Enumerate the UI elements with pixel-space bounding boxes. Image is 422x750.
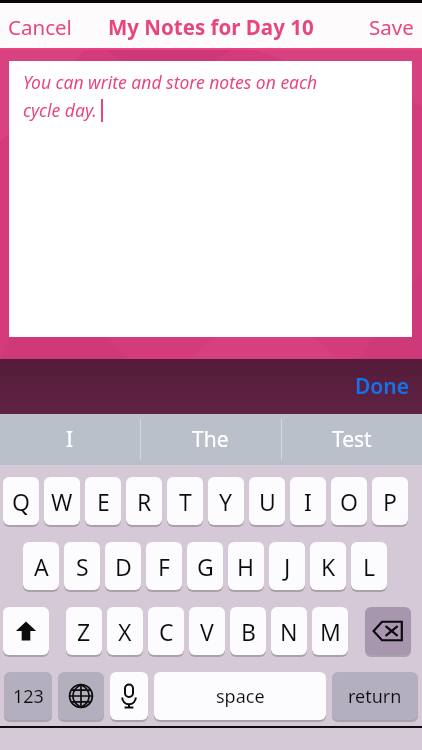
- button[interactable]: W: [44, 477, 80, 525]
- staticText: S: [76, 551, 89, 582]
- button[interactable]: You can write and store notes on each: [9, 61, 412, 337]
- button[interactable]: Cancel: [2, 7, 78, 47]
- button[interactable]: [58, 672, 104, 720]
- button[interactable]: E: [85, 477, 121, 525]
- button[interactable]: O: [331, 477, 367, 525]
- staticText: You can write and store notes on each: [23, 70, 318, 94]
- staticText: N: [280, 616, 298, 647]
- button[interactable]: Y: [208, 477, 244, 525]
- staticText: P: [383, 486, 397, 517]
- button[interactable]: Done: [347, 366, 418, 407]
- staticText: R: [137, 486, 152, 517]
- button[interactable]: D: [105, 542, 141, 590]
- button[interactable]: X: [107, 607, 143, 655]
- button[interactable]: T: [167, 477, 203, 525]
- button[interactable]: Test: [281, 414, 422, 465]
- staticText: The: [192, 425, 229, 454]
- button[interactable]: G: [187, 542, 223, 590]
- staticText: My Notes for Day 10: [108, 13, 314, 41]
- button[interactable]: B: [230, 607, 266, 655]
- button[interactable]: [3, 607, 49, 655]
- staticText: B: [241, 616, 256, 647]
- staticText: O: [340, 486, 358, 517]
- staticText: U: [259, 486, 276, 517]
- staticText: X: [118, 616, 132, 647]
- button[interactable]: L: [351, 542, 387, 590]
- staticText: T: [179, 486, 192, 517]
- button[interactable]: [365, 607, 411, 655]
- button[interactable]: [110, 672, 148, 720]
- staticText: Cancel: [8, 13, 72, 41]
- staticText: space: [216, 684, 265, 709]
- staticText: K: [321, 551, 336, 582]
- other: Backspace: [365, 607, 411, 655]
- staticText: E: [97, 486, 110, 517]
- button[interactable]: P: [372, 477, 408, 525]
- button[interactable]: J: [269, 542, 305, 590]
- button[interactable]: H: [228, 542, 264, 590]
- staticText: Done: [355, 372, 410, 401]
- staticText: cycle day.: [23, 98, 97, 122]
- button[interactable]: I: [0, 414, 140, 465]
- button[interactable]: F: [146, 542, 182, 590]
- other: Dictate: [110, 672, 148, 720]
- staticText: V: [200, 616, 214, 647]
- other: Switch keyboard language: [58, 672, 104, 720]
- button[interactable]: Save: [363, 7, 420, 47]
- staticText: A: [34, 551, 49, 582]
- staticText: Test: [332, 425, 372, 454]
- staticText: M: [320, 616, 341, 647]
- staticText: Y: [219, 486, 233, 517]
- staticText: Save: [369, 13, 414, 41]
- button[interactable]: return: [332, 672, 418, 720]
- button[interactable]: N: [271, 607, 307, 655]
- button[interactable]: V: [189, 607, 225, 655]
- staticText: I: [66, 425, 74, 454]
- button[interactable]: R: [126, 477, 162, 525]
- staticText: L: [363, 551, 376, 582]
- button[interactable]: M: [312, 607, 348, 655]
- staticText: W: [51, 486, 73, 517]
- staticText: J: [284, 551, 291, 582]
- staticText: return: [348, 684, 402, 709]
- button[interactable]: K: [310, 542, 346, 590]
- staticText: I: [304, 486, 312, 517]
- button[interactable]: I: [290, 477, 326, 525]
- staticText: Z: [77, 616, 91, 647]
- button[interactable]: The: [140, 414, 281, 465]
- staticText: Q: [12, 486, 30, 517]
- staticText: D: [115, 551, 132, 582]
- button[interactable]: space: [154, 672, 326, 720]
- button[interactable]: S: [64, 542, 100, 590]
- button[interactable]: A: [23, 542, 59, 590]
- button[interactable]: Q: [3, 477, 39, 525]
- other: Shift: [3, 607, 49, 655]
- button[interactable]: U: [249, 477, 285, 525]
- button[interactable]: 123: [4, 672, 52, 720]
- button[interactable]: Z: [66, 607, 102, 655]
- staticText: H: [237, 551, 255, 582]
- staticText: 123: [13, 684, 44, 709]
- staticText: G: [197, 551, 214, 582]
- staticText: C: [159, 616, 174, 647]
- staticText: F: [158, 551, 170, 582]
- button[interactable]: C: [148, 607, 184, 655]
